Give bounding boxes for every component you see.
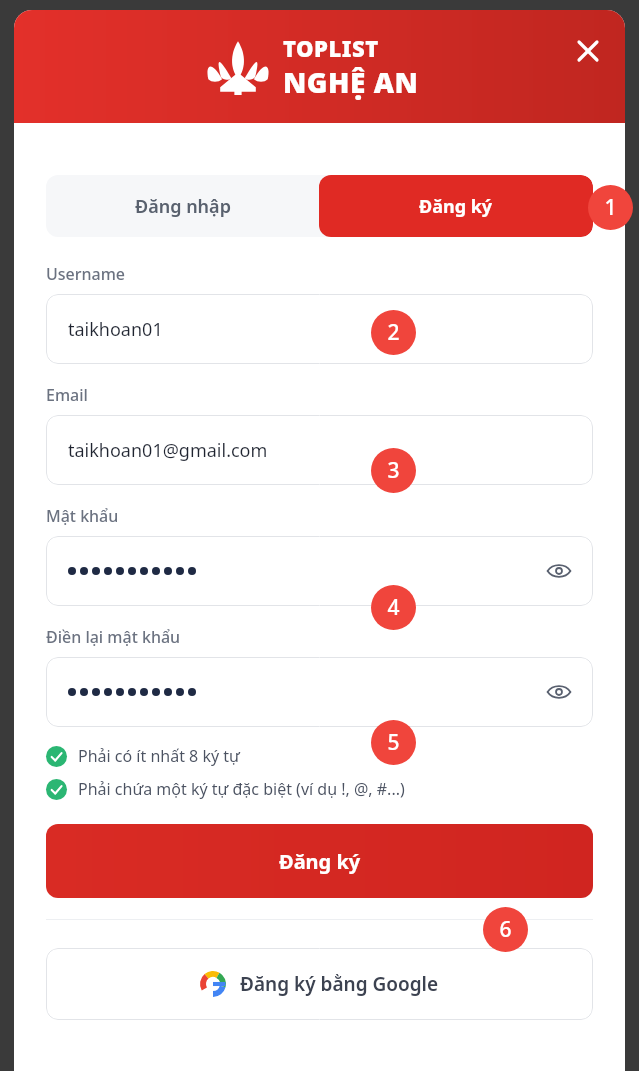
staticText: 2: [387, 318, 400, 347]
staticText: Email: [46, 384, 88, 406]
staticText: taikhoan01: [68, 317, 163, 342]
button[interactable]: Show password: [539, 672, 579, 712]
button[interactable]: taikhoan01@gmail.com: [46, 415, 593, 485]
staticText: Phải có ít nhất 8 ký tự: [78, 745, 240, 767]
staticText: Username: [46, 263, 126, 285]
button[interactable]: Show password: [46, 657, 593, 727]
staticText: Điền lại mật khẩu: [46, 626, 181, 648]
staticText: 6: [499, 915, 512, 944]
staticText: 5: [387, 728, 400, 757]
button[interactable]: Show password: [539, 551, 579, 591]
staticText: 1: [604, 193, 617, 222]
staticText: TOPLIST: [283, 33, 379, 63]
staticText: Đăng ký: [279, 848, 361, 875]
button[interactable]: Đăng ký: [319, 175, 593, 237]
button[interactable]: Đăng nhập: [46, 175, 319, 237]
staticText: 4: [387, 593, 400, 622]
button[interactable]: Show password: [46, 536, 593, 606]
staticText: Đăng nhập: [135, 194, 231, 219]
staticText: NGHỆ AN: [283, 63, 419, 101]
staticText: Phải chứa một ký tự đặc biệt (ví dụ !, @…: [78, 778, 405, 800]
staticText: taikhoan01@gmail.com: [68, 438, 268, 463]
button[interactable]: Close: [565, 28, 611, 74]
staticText: Mật khẩu: [46, 505, 119, 527]
button[interactable]: taikhoan01: [46, 294, 593, 364]
staticText: 3: [387, 456, 400, 485]
button[interactable]: Đăng ký: [46, 824, 593, 898]
staticText: Đăng ký: [419, 194, 493, 219]
staticText: Đăng ký bằng Google: [240, 971, 439, 997]
button[interactable]: Đăng ký bằng Google: [46, 948, 593, 1020]
